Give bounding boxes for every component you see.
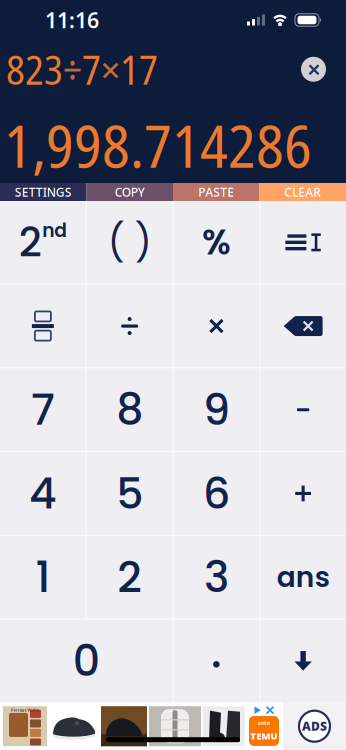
button[interactable]: Decimal point <box>173 619 259 702</box>
button[interactable]: 2 <box>87 536 173 618</box>
staticText: Vintage Wallet <box>10 707 39 712</box>
staticText: 4 <box>29 464 57 523</box>
staticText: ADS <box>302 718 327 734</box>
button[interactable]: About these ads <box>283 702 346 750</box>
staticText: ( <box>108 216 125 268</box>
staticText: × <box>101 42 120 96</box>
button[interactable]: 4 <box>0 452 86 535</box>
button[interactable]: 5 <box>87 452 173 535</box>
button[interactable]: SETTINGS <box>0 183 86 201</box>
button[interactable]: Subtract <box>260 368 346 451</box>
button[interactable]: 0 <box>0 619 172 702</box>
staticText: % <box>202 218 231 267</box>
staticText: nd <box>42 217 67 243</box>
button[interactable]: Close ad <box>266 707 273 714</box>
staticText: 7 <box>82 42 101 96</box>
button[interactable]: 1 <box>0 536 86 618</box>
button[interactable]: ( <box>87 201 173 284</box>
staticText: 8 <box>116 380 143 440</box>
staticText: 0 <box>73 631 100 691</box>
staticText: 2 <box>19 214 42 270</box>
button[interactable]: Multiply <box>173 285 259 367</box>
staticText: ) <box>135 216 152 268</box>
button[interactable]: Delete <box>260 285 346 367</box>
staticText: 9 <box>203 380 230 440</box>
button[interactable]: Ad choices <box>254 706 261 714</box>
staticText: 5 <box>116 464 143 523</box>
staticText: 11:16 <box>45 6 99 34</box>
staticText: 823 <box>6 42 63 96</box>
button[interactable]: Add <box>260 452 346 535</box>
button[interactable]: 8 <box>87 368 173 451</box>
button[interactable]: 3 <box>173 536 259 618</box>
staticText: PASTE <box>198 184 234 200</box>
staticText: 6 <box>203 464 230 523</box>
staticText: TEMU <box>250 730 277 742</box>
button[interactable]: Hide keypad <box>260 619 346 702</box>
staticText: 2 <box>117 547 142 607</box>
staticText: ÷ <box>63 42 82 96</box>
staticText: 3 <box>204 547 229 607</box>
button[interactable]: CLEAR <box>259 183 346 201</box>
staticText: COPY <box>115 184 145 200</box>
staticText: 7 <box>31 380 55 440</box>
button[interactable]: Temu advertisement <box>249 716 279 746</box>
button[interactable]: % <box>173 201 259 284</box>
button[interactable]: Shoes advertisement <box>3 706 245 746</box>
staticText: ᴬᴹᴵᴮ <box>258 720 270 729</box>
button[interactable]: 2 <box>0 201 86 284</box>
button[interactable]: 9 <box>173 368 259 451</box>
button[interactable]: PASTE <box>173 183 259 201</box>
staticText: 1,998.714286 <box>4 105 312 185</box>
staticText: 17 <box>120 42 158 96</box>
button[interactable]: COPY <box>86 183 173 201</box>
button[interactable]: Clear expression <box>301 57 326 82</box>
staticText: SETTINGS <box>15 184 72 200</box>
button[interactable]: Edit expression <box>260 201 346 284</box>
staticText: CLEAR <box>284 184 321 200</box>
staticText: 1 <box>35 547 50 607</box>
button[interactable]: ans <box>260 536 346 618</box>
button[interactable]: 6 <box>173 452 259 535</box>
button[interactable]: Fraction <box>0 285 86 367</box>
button[interactable]: 7 <box>0 368 86 451</box>
staticText: ans <box>277 557 330 597</box>
button[interactable]: Divide <box>87 285 173 367</box>
